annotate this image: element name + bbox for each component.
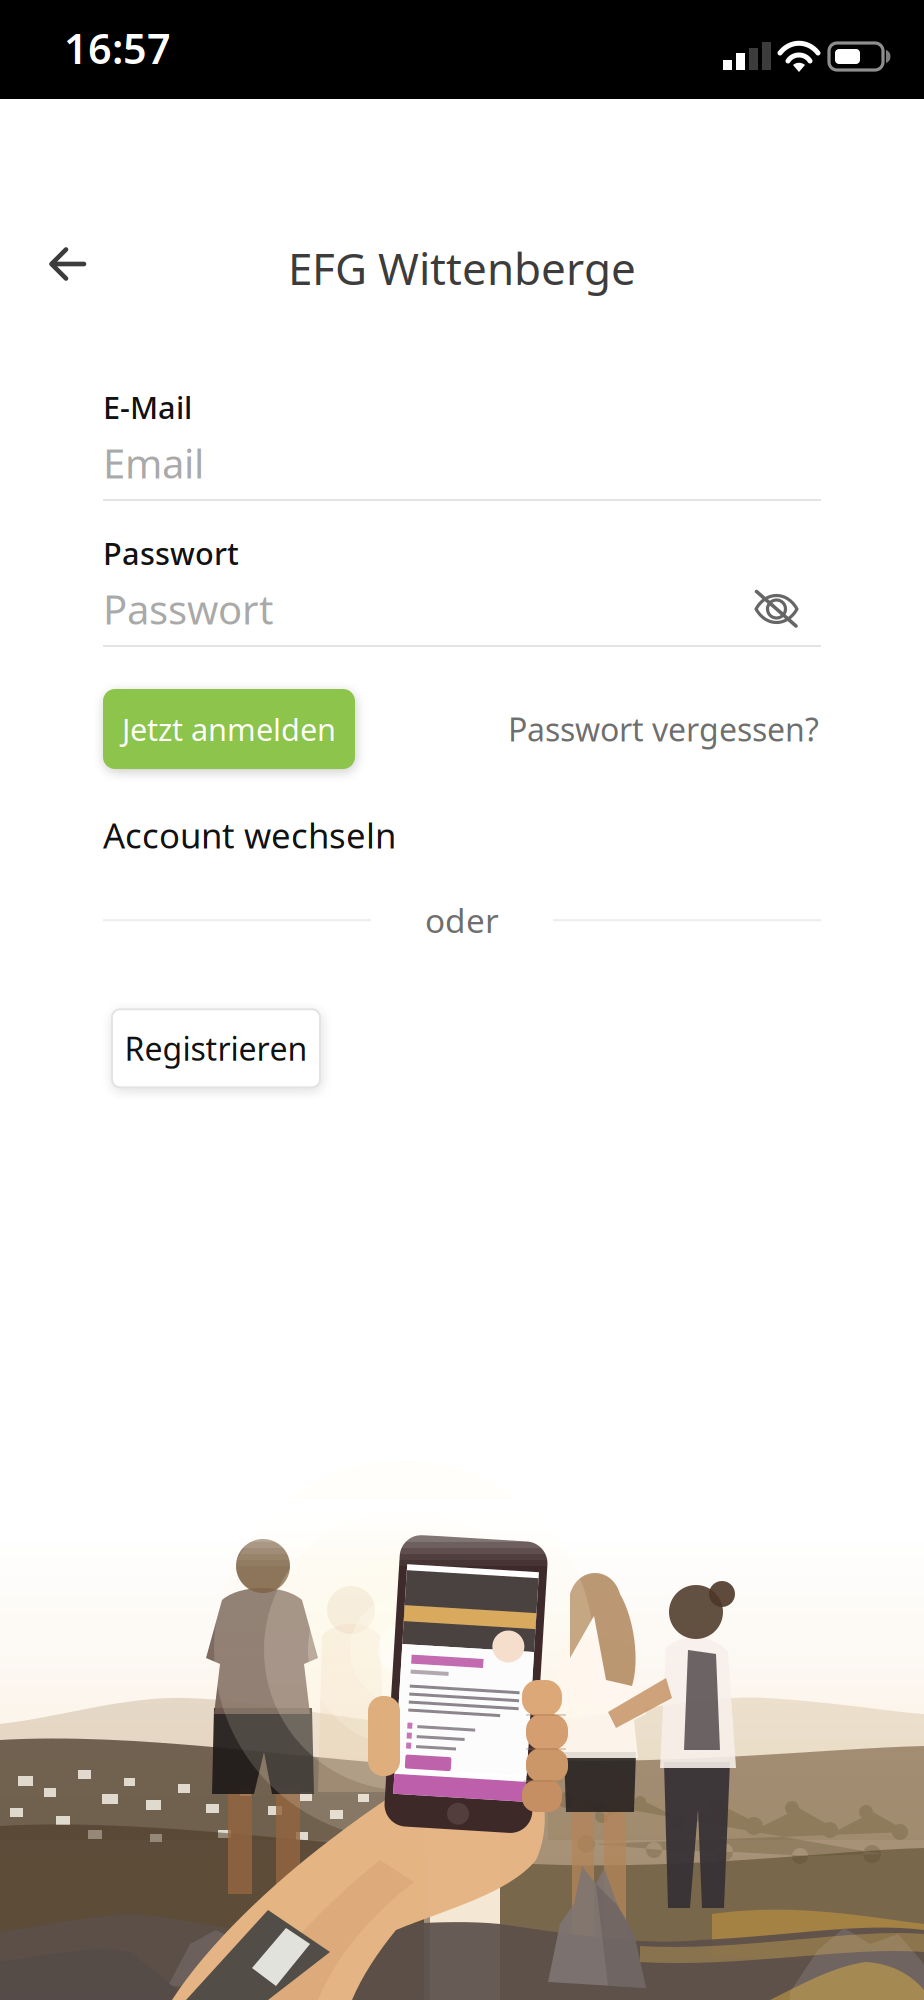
button[interactable]: Jetzt anmelden <box>103 689 355 769</box>
staticText: Passwort <box>103 582 273 635</box>
staticText: Passwort vergessen? <box>508 708 819 750</box>
staticText: Registrieren <box>124 1027 307 1070</box>
button[interactable]: Registrieren <box>112 1009 320 1087</box>
staticText: Email <box>103 436 204 489</box>
staticText: Account wechseln <box>103 812 396 858</box>
staticText: Passwort <box>103 533 239 573</box>
button[interactable]: Zurück <box>32 228 104 300</box>
button[interactable]: Passwort anzeigen <box>748 584 805 634</box>
staticText: EFG Wittenberge <box>288 239 636 297</box>
staticText: Jetzt anmelden <box>122 709 336 749</box>
staticText: E-Mail <box>103 387 192 427</box>
staticText: 16:57 <box>64 21 171 75</box>
button[interactable]: Account wechseln <box>103 812 396 858</box>
button[interactable]: Passwort vergessen? <box>508 708 819 750</box>
staticText: oder <box>425 898 499 942</box>
